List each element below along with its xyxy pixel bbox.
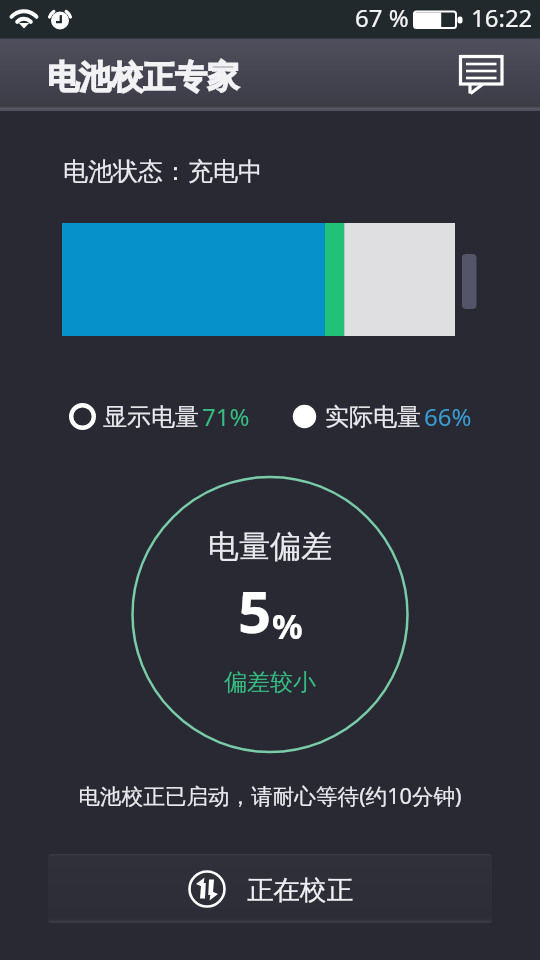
staticText: 电池校正专家 (47, 57, 239, 97)
button[interactable]: 正在校正 (48, 854, 492, 923)
staticText: 显示电量 (103, 402, 199, 432)
staticText: 电量偏差 (208, 527, 332, 566)
staticText: 正在校正 (247, 873, 353, 906)
staticText: 电池状态：充电中 (63, 156, 263, 187)
staticText: 66% (424, 400, 472, 433)
staticText: 71% (202, 400, 250, 433)
staticText: 16:22 (471, 1, 533, 34)
button[interactable]: Feedback (445, 38, 515, 107)
staticText: % (272, 603, 303, 649)
staticText: 5 (238, 571, 272, 650)
staticText: 67 % (355, 1, 409, 34)
staticText: 电池校正已启动，请耐心等待(约10分钟) (0, 781, 540, 811)
staticText: 实际电量 (325, 402, 421, 432)
staticText: 偏差较小 (224, 668, 316, 697)
